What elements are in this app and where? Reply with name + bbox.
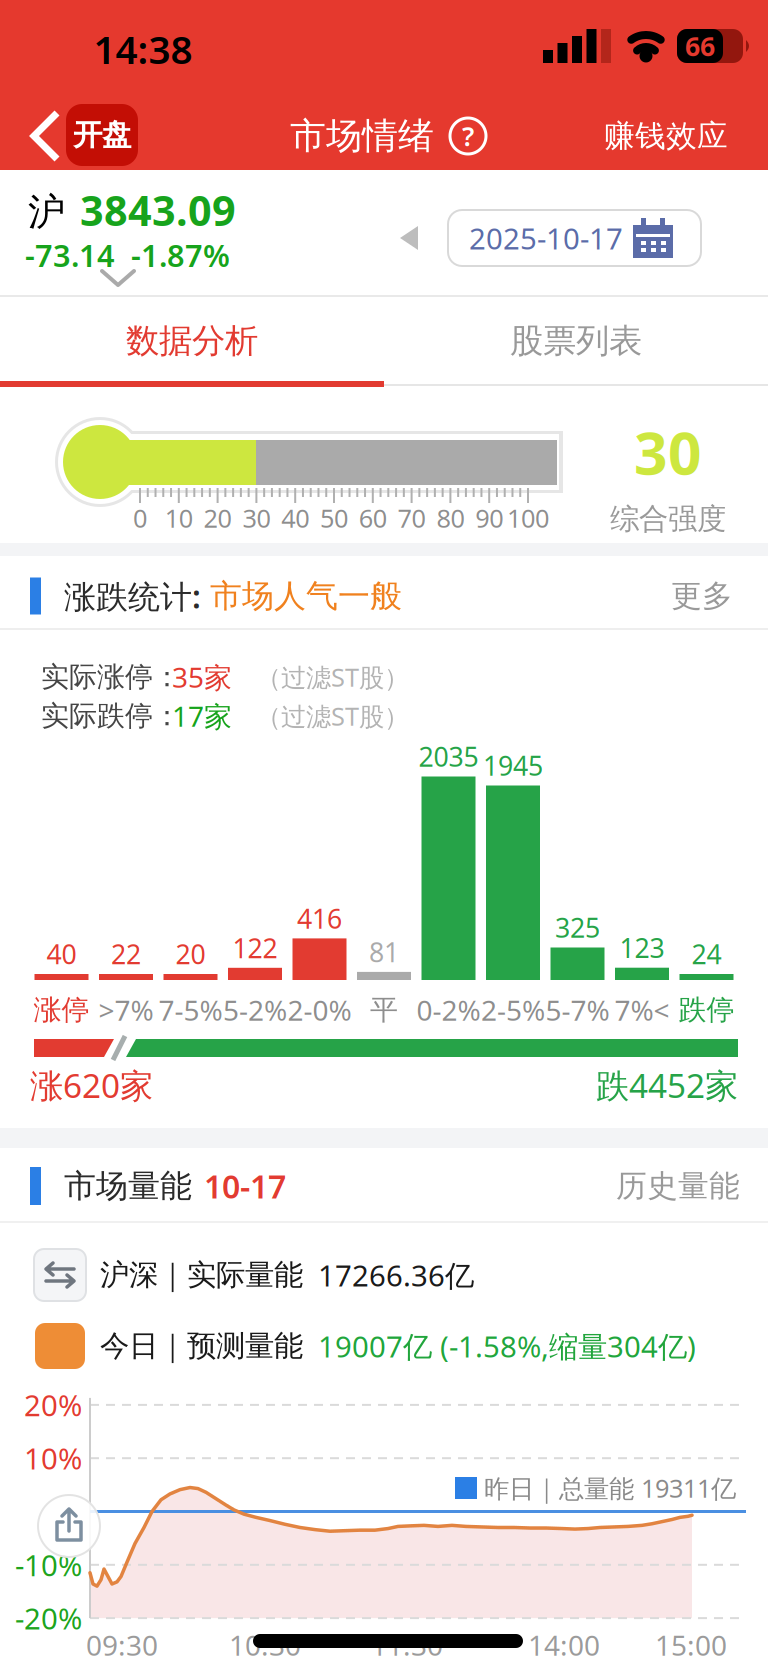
staticText: 60 xyxy=(359,501,387,535)
button[interactable]: ? xyxy=(448,116,488,156)
staticText: 开盘 xyxy=(73,117,131,153)
staticText: 123 xyxy=(619,930,664,965)
staticText: -73.14 -1.87% xyxy=(25,235,230,275)
button[interactable] xyxy=(96,266,140,292)
staticText: 跌停 xyxy=(678,993,734,1027)
staticText: 7-5% xyxy=(158,991,222,1029)
button[interactable] xyxy=(38,1495,100,1557)
staticText: 14:00 xyxy=(528,1626,600,1663)
staticText: 2-5% xyxy=(481,991,545,1029)
staticText: -20% xyxy=(15,1599,82,1638)
staticText: 2035 xyxy=(418,739,478,774)
staticText: 81 xyxy=(369,934,399,970)
staticText: 325 xyxy=(555,910,600,945)
staticText: 10% xyxy=(24,1439,82,1478)
button[interactable]: 股票列表 xyxy=(384,297,768,385)
staticText: 10 xyxy=(165,501,193,535)
staticText: 11:30 xyxy=(371,1626,443,1663)
button[interactable]: 更多 xyxy=(647,563,757,629)
staticText: ? xyxy=(462,118,474,154)
staticText: 22 xyxy=(111,936,141,972)
staticText: （过滤ST股） xyxy=(256,699,409,733)
staticText: 24 xyxy=(691,936,721,972)
staticText: 市场情绪 xyxy=(290,114,434,158)
staticText: 5-2% xyxy=(223,991,287,1029)
staticText: 30 xyxy=(634,413,702,491)
button[interactable]: 赚钱效应 xyxy=(586,106,746,166)
staticText: 40 xyxy=(281,501,309,535)
staticText: 15:00 xyxy=(655,1626,727,1663)
staticText: 7%< xyxy=(614,991,669,1029)
staticText: 40 xyxy=(46,936,76,972)
staticText: 50 xyxy=(320,501,348,535)
staticText: 赚钱效应 xyxy=(604,117,728,155)
staticText: 5-7% xyxy=(545,991,609,1029)
button[interactable]: 开盘 xyxy=(66,104,138,166)
button[interactable]: 数据分析 xyxy=(0,297,384,385)
staticText: （过滤ST股） xyxy=(256,660,409,694)
staticText: -10% xyxy=(15,1545,82,1584)
staticText: 20% xyxy=(24,1385,82,1424)
button[interactable] xyxy=(398,224,422,252)
staticText: 沪 xyxy=(28,189,65,235)
staticText: 10-17 xyxy=(204,1165,286,1207)
staticText: 17266.36亿 xyxy=(318,1255,474,1294)
staticText: 416 xyxy=(297,901,342,936)
staticText: 沪深｜实际量能 xyxy=(100,1257,303,1293)
staticText: 09:30 xyxy=(86,1626,158,1663)
staticText: 122 xyxy=(232,930,277,965)
staticText: 股票列表 xyxy=(510,320,642,361)
button[interactable]: 历史量能 xyxy=(593,1153,763,1219)
staticText: 历史量能 xyxy=(616,1167,740,1205)
staticText: 70 xyxy=(398,501,426,535)
staticText: 66 xyxy=(685,28,715,64)
staticText: 3843.09 xyxy=(80,183,236,237)
staticText: 90 xyxy=(475,501,503,535)
staticText: >7% xyxy=(98,991,153,1029)
staticText: 更多 xyxy=(671,577,733,615)
staticText: 2-0% xyxy=(287,991,351,1029)
staticText: 实际涨停： xyxy=(41,660,181,694)
staticText: 涨620家 xyxy=(30,1063,153,1107)
staticText: 涨停 xyxy=(33,993,89,1027)
staticText: 涨跌统计: xyxy=(64,575,201,617)
staticText: 今日｜预测量能 xyxy=(100,1328,303,1364)
staticText: 14:38 xyxy=(93,23,192,75)
staticText: 综合强度 xyxy=(610,501,726,537)
staticText: 跌4452家 xyxy=(596,1063,738,1107)
staticText: 20 xyxy=(175,936,205,972)
staticText: 2025-10-17 xyxy=(469,218,623,257)
staticText: 20 xyxy=(204,501,232,535)
staticText: 实际跌停： xyxy=(41,699,181,733)
staticText: 10:30 xyxy=(229,1626,301,1663)
staticText: 市场量能 xyxy=(64,1166,192,1206)
staticText: 平 xyxy=(370,993,398,1027)
staticText: 17家 xyxy=(172,697,232,735)
staticText: 0 xyxy=(133,501,147,535)
staticText: 0-2% xyxy=(416,991,480,1029)
button[interactable] xyxy=(22,108,70,164)
staticText: 80 xyxy=(436,501,464,535)
staticText: 市场人气一般 xyxy=(210,576,402,616)
staticText: 19007亿 (-1.58%,缩量304亿) xyxy=(318,1326,696,1365)
staticText: 30 xyxy=(242,501,270,535)
staticText: 数据分析 xyxy=(126,320,258,361)
button[interactable]: 2025-10-17 xyxy=(448,210,701,266)
staticText: 100 xyxy=(507,501,549,535)
staticText: 1945 xyxy=(483,748,543,783)
staticText: 昨日｜总量能 19311亿 xyxy=(484,1471,736,1505)
staticText: 35家 xyxy=(172,658,232,696)
